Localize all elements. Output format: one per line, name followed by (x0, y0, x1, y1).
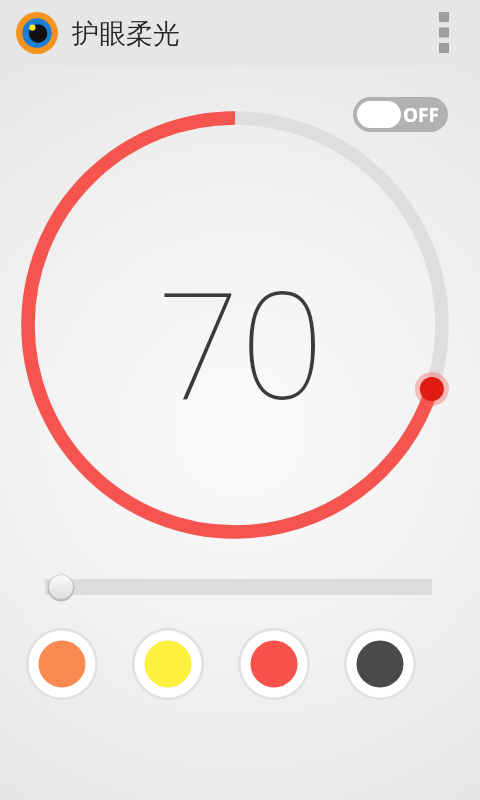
other: App icon (16, 12, 58, 54)
staticText: OFF (403, 102, 439, 128)
staticText: 护眼柔光 (72, 17, 180, 51)
button[interactable]: Red (238, 628, 310, 700)
button[interactable]: Toggle off (353, 97, 448, 132)
button[interactable]: Orange (26, 628, 98, 700)
button[interactable]: More options (424, 13, 464, 53)
staticText: 70 (0, 241, 480, 443)
button[interactable]: Intensity slider (0, 566, 480, 608)
button[interactable]: Yellow (132, 628, 204, 700)
button[interactable]: Dark (344, 628, 416, 700)
button[interactable]: Brightness dial 70 (0, 0, 480, 800)
